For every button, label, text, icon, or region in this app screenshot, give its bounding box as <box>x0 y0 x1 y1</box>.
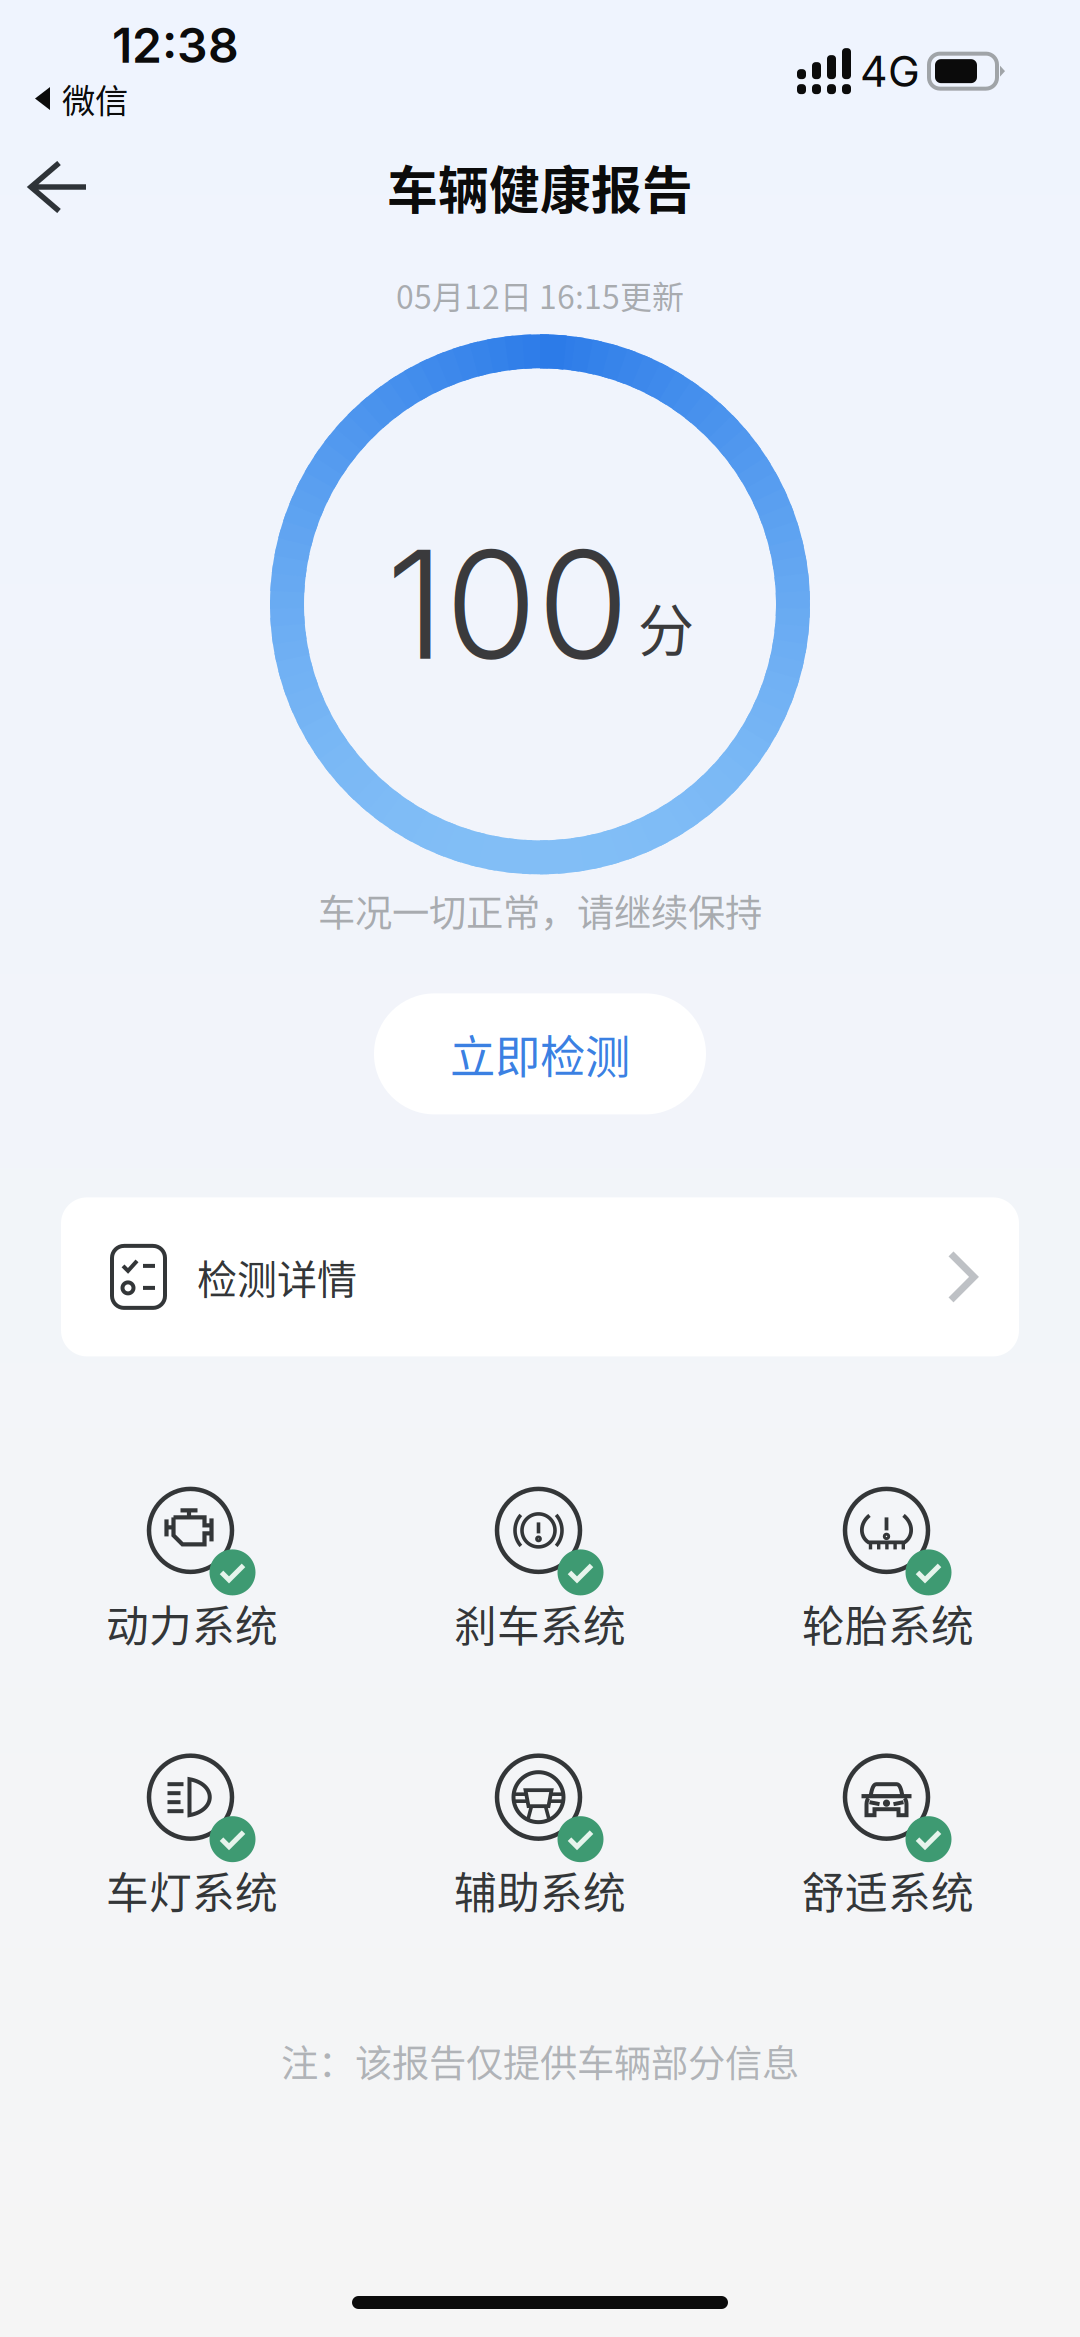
button[interactable]: 动力系统 <box>18 1489 366 1654</box>
staticText: 微信 <box>62 74 128 123</box>
staticText: 车辆健康报告 <box>387 150 693 224</box>
button[interactable]: 轮胎系统 <box>714 1489 1062 1654</box>
staticText: 车灯系统 <box>106 1859 278 1921</box>
button[interactable]: 车灯系统 <box>18 1756 366 1921</box>
staticText: 注：该报告仅提供车辆部分信息 <box>281 2034 799 2088</box>
staticText: 05月12日 16:15更新 <box>396 272 684 318</box>
button[interactable]: 辅助系统 <box>366 1756 714 1921</box>
staticText: 舒适系统 <box>802 1859 974 1921</box>
button[interactable]: 立即检测 <box>374 993 706 1114</box>
button[interactable]: 舒适系统 <box>714 1756 1062 1921</box>
button[interactable]: Back <box>3 135 112 239</box>
staticText: 立即检测 <box>450 1021 630 1087</box>
button[interactable]: 刹车系统 <box>366 1489 714 1654</box>
button[interactable]: 检测详情 <box>61 1197 1019 1356</box>
staticText: 检测详情 <box>197 1248 357 1306</box>
staticText: 刹车系统 <box>454 1592 626 1654</box>
staticText: 辅助系统 <box>454 1859 626 1921</box>
staticText: 分 <box>638 586 694 667</box>
staticText: 动力系统 <box>106 1592 278 1654</box>
staticText: 100 <box>386 514 629 695</box>
staticText: 4G <box>860 45 920 97</box>
staticText: 12:38 <box>112 16 239 74</box>
staticText: 车况一切正常，请继续保持 <box>318 883 762 937</box>
staticText: 轮胎系统 <box>802 1592 974 1654</box>
